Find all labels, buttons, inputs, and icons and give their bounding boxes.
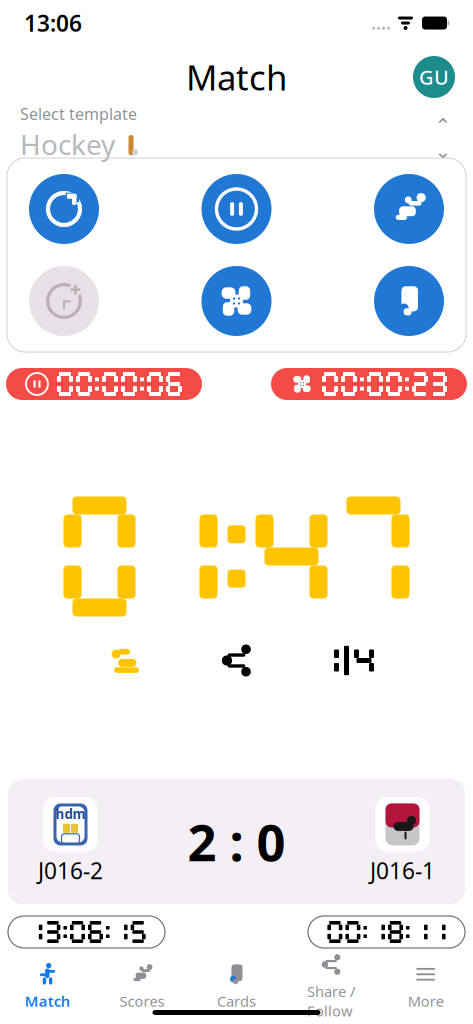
button[interactable]: Injury — [201, 266, 271, 336]
staticText: Match — [25, 991, 70, 1011]
button[interactable]: Card — [374, 266, 444, 336]
button[interactable]: Share — [181, 638, 291, 682]
button[interactable]: Add time — [29, 266, 99, 336]
staticText: 2 : 0 — [187, 808, 285, 875]
staticText: J016-1 — [370, 855, 435, 885]
button[interactable]: Account — [413, 56, 455, 98]
staticText: J016-2 — [38, 855, 103, 885]
staticText: hdm — [55, 805, 85, 823]
button[interactable]: Cards — [189, 955, 284, 1011]
staticText: Share / Follow — [307, 981, 355, 1020]
button[interactable]: Goal — [374, 174, 444, 244]
button[interactable]: Scores — [95, 955, 189, 1011]
button[interactable]: Select template — [0, 108, 473, 158]
button[interactable]: Pause — [201, 174, 271, 244]
staticText: GU — [419, 64, 449, 90]
staticText: More — [408, 991, 444, 1011]
button[interactable]: Share / Follow — [284, 945, 378, 1020]
staticText: 13:06 — [24, 8, 82, 38]
button[interactable]: Match — [0, 955, 95, 1011]
button[interactable]: Restart — [29, 174, 99, 244]
staticText: ⌃ — [434, 114, 451, 137]
staticText: ⌄ — [434, 140, 451, 163]
staticText: Hockey — [20, 125, 115, 163]
staticText: Select template — [20, 103, 137, 124]
staticText: Match — [186, 54, 287, 100]
button[interactable]: More — [378, 955, 473, 1011]
staticText: Scores — [119, 991, 164, 1011]
staticText: Cards — [217, 991, 256, 1011]
staticText: .... — [371, 11, 391, 34]
